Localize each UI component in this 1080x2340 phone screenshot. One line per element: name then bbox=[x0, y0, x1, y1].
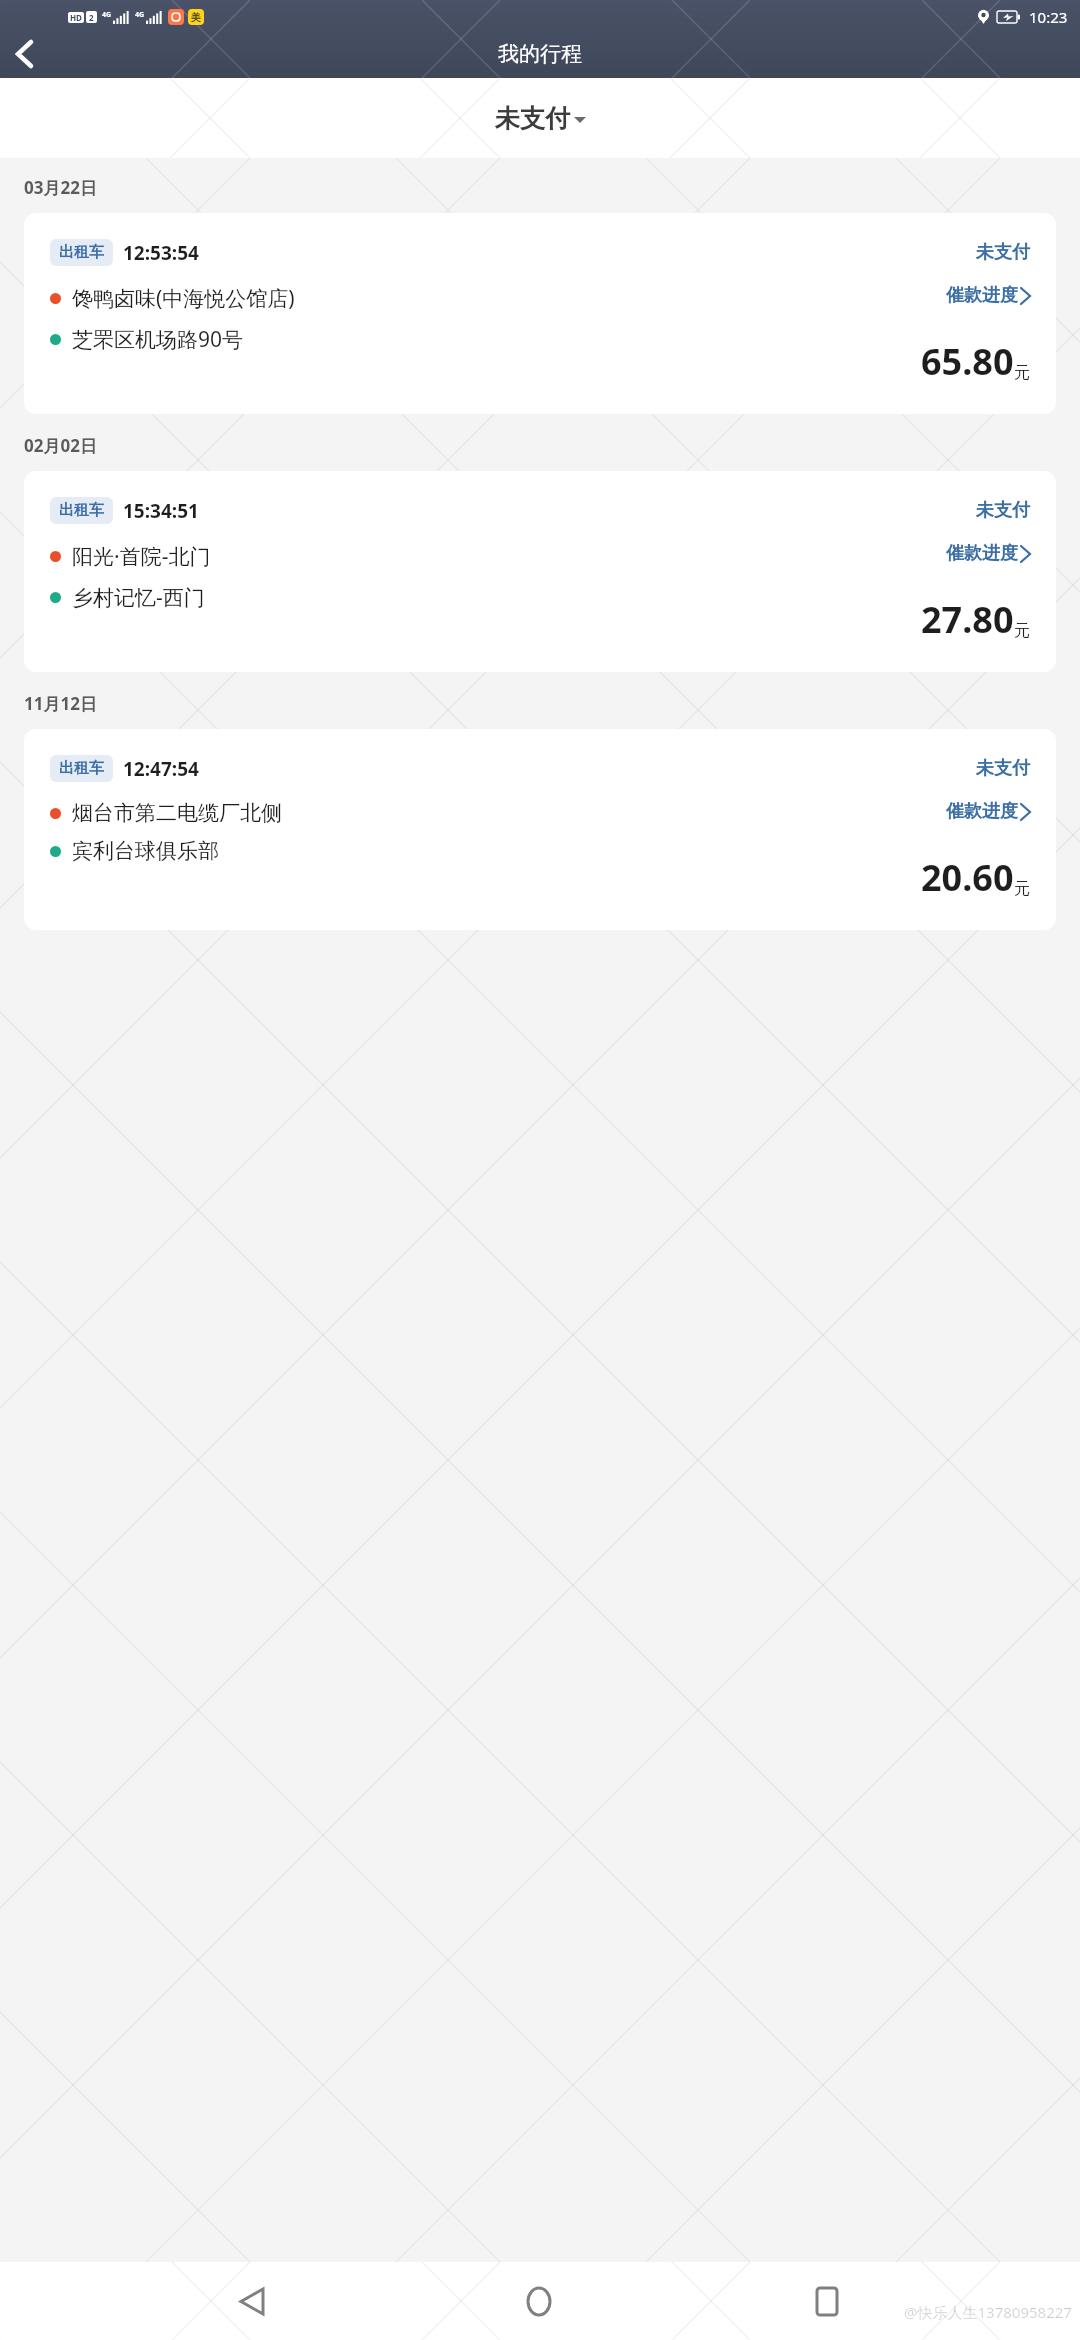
staticText: 元 bbox=[1014, 879, 1030, 899]
button[interactable]: 催款进度 bbox=[946, 800, 1030, 823]
staticText: 27.80 bbox=[921, 595, 1014, 644]
staticText: 出租车 bbox=[59, 501, 104, 520]
staticText: 65.80 bbox=[921, 337, 1014, 386]
button[interactable]: Back bbox=[0, 30, 48, 78]
staticText: 阳光·首院-北门 bbox=[72, 542, 211, 571]
button[interactable]: Back bbox=[217, 2266, 287, 2336]
button[interactable]: Recents bbox=[792, 2266, 862, 2336]
button[interactable]: 出租车 bbox=[24, 471, 1056, 672]
button[interactable]: 出租车 bbox=[24, 729, 1056, 930]
staticText: 元 bbox=[1014, 363, 1030, 383]
staticText: 宾利台球俱乐部 bbox=[72, 838, 219, 864]
staticText: 未支付 bbox=[495, 103, 570, 134]
staticText: 12:53:54 bbox=[123, 240, 199, 266]
staticText: HD bbox=[70, 12, 82, 23]
button[interactable]: 未支付 bbox=[495, 103, 586, 134]
staticText: 10:23 bbox=[1029, 7, 1068, 27]
staticText: 催款进度 bbox=[946, 542, 1018, 565]
staticText: 4G bbox=[102, 10, 112, 20]
staticText: 乡村记忆-西门 bbox=[72, 583, 205, 612]
button[interactable]: 催款进度 bbox=[946, 284, 1030, 307]
staticText: 15:34:51 bbox=[123, 498, 199, 524]
staticText: 4G bbox=[135, 10, 145, 20]
staticText: 12:47:54 bbox=[123, 756, 199, 782]
staticText: 芝罘区机场路90号 bbox=[72, 325, 244, 354]
staticText: 出租车 bbox=[59, 243, 104, 262]
staticText: @快乐人生13780958227 bbox=[904, 2302, 1072, 2322]
staticText: 20.60 bbox=[921, 853, 1014, 902]
staticText: 催款进度 bbox=[946, 800, 1018, 823]
staticText: 未支付 bbox=[976, 241, 1030, 264]
staticText: 11月12日 bbox=[24, 692, 97, 715]
staticText: 催款进度 bbox=[946, 284, 1018, 307]
staticText: 02月02日 bbox=[24, 434, 97, 457]
staticText: 我的行程 bbox=[498, 41, 582, 67]
staticText: 未支付 bbox=[976, 499, 1030, 522]
staticText: 出租车 bbox=[59, 759, 104, 778]
staticText: 2 bbox=[89, 12, 94, 23]
staticText: 馋鸭卤味(中海悦公馆店) bbox=[72, 284, 295, 313]
staticText: 元 bbox=[1014, 621, 1030, 641]
staticText: 美 bbox=[191, 11, 201, 24]
staticText: 03月22日 bbox=[24, 176, 97, 199]
button[interactable]: 出租车 bbox=[24, 213, 1056, 414]
staticText: 烟台市第二电缆厂北侧 bbox=[72, 800, 282, 826]
staticText: 未支付 bbox=[976, 757, 1030, 780]
button[interactable]: 催款进度 bbox=[946, 542, 1030, 565]
button[interactable]: Home bbox=[504, 2266, 574, 2336]
